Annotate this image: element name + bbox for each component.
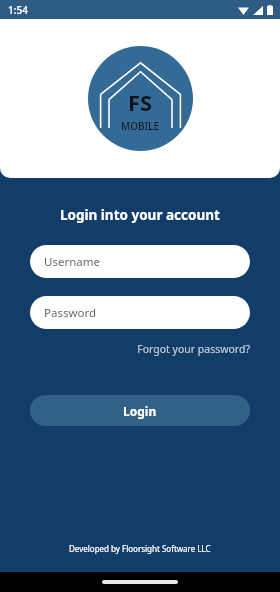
staticText: MOBILE <box>121 119 160 133</box>
button[interactable]: Password <box>30 296 250 329</box>
staticText: Login into your account <box>60 206 220 224</box>
staticText: FS <box>128 87 153 117</box>
staticText: Developed by Floorsight Software LLC <box>69 543 211 554</box>
staticText: Forgot your password? <box>137 342 250 356</box>
staticText: Password <box>44 305 97 321</box>
button[interactable]: Forgot your password? <box>137 339 250 359</box>
staticText: 1:54 <box>8 3 28 17</box>
button[interactable]: Login <box>30 395 250 426</box>
staticText: Username <box>44 254 100 270</box>
button[interactable]: Username <box>30 245 250 278</box>
staticText: Login <box>123 403 157 419</box>
